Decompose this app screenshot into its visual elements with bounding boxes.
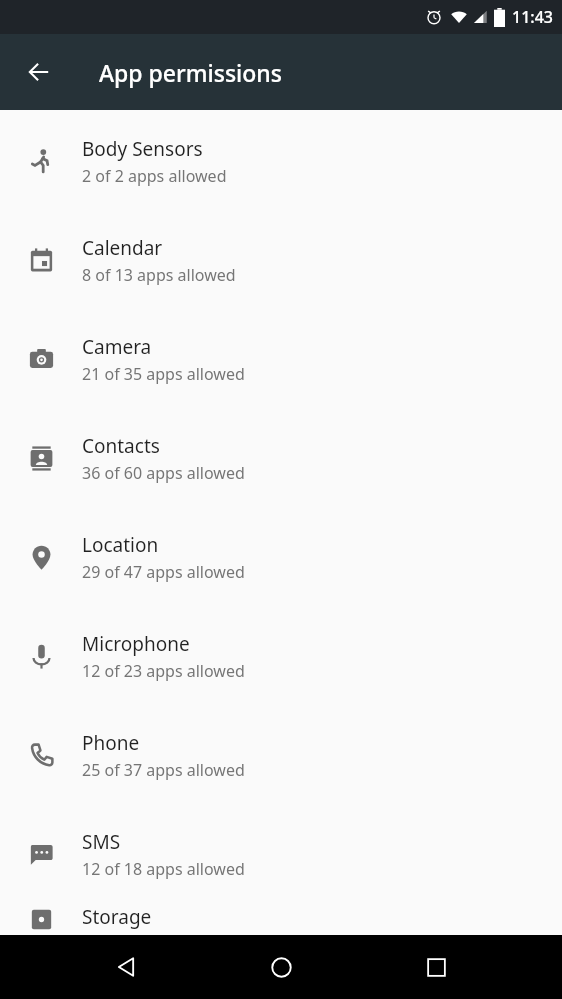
staticText: 29 of 47 apps allowed — [82, 561, 245, 583]
staticText: 11:43 — [512, 6, 553, 28]
staticText: Contacts — [82, 433, 160, 459]
staticText: Location — [82, 532, 159, 558]
staticText: 12 of 18 apps allowed — [82, 858, 245, 880]
staticText: 21 of 35 apps allowed — [82, 363, 245, 385]
button[interactable]: Back — [99, 939, 155, 995]
button[interactable]: Home — [253, 939, 309, 995]
button[interactable]: Microphone — [0, 607, 562, 706]
staticText: 12 of 23 apps allowed — [82, 660, 245, 682]
staticText: Storage — [82, 904, 152, 930]
staticText: 2 of 2 apps allowed — [82, 165, 227, 187]
staticText: 25 of 37 apps allowed — [82, 759, 245, 781]
staticText: SMS — [82, 829, 121, 855]
staticText: Calendar — [82, 235, 163, 261]
staticText: Body Sensors — [82, 136, 203, 162]
button[interactable]: Location — [0, 508, 562, 607]
button[interactable]: Phone — [0, 706, 562, 805]
button[interactable]: Contacts — [0, 409, 562, 508]
button[interactable]: SMS — [0, 805, 562, 904]
staticText: App permissions — [99, 57, 282, 88]
staticText: Phone — [82, 730, 140, 756]
button[interactable]: Recents — [408, 939, 464, 995]
button[interactable]: Back — [11, 44, 67, 100]
staticText: 8 of 13 apps allowed — [82, 264, 236, 286]
button[interactable]: Camera — [0, 310, 562, 409]
staticText: Camera — [82, 334, 152, 360]
button[interactable]: Body Sensors — [0, 112, 562, 211]
button[interactable]: Storage — [0, 904, 562, 935]
staticText: 36 of 60 apps allowed — [82, 462, 245, 484]
staticText: Microphone — [82, 631, 190, 657]
button[interactable]: Calendar — [0, 211, 562, 310]
